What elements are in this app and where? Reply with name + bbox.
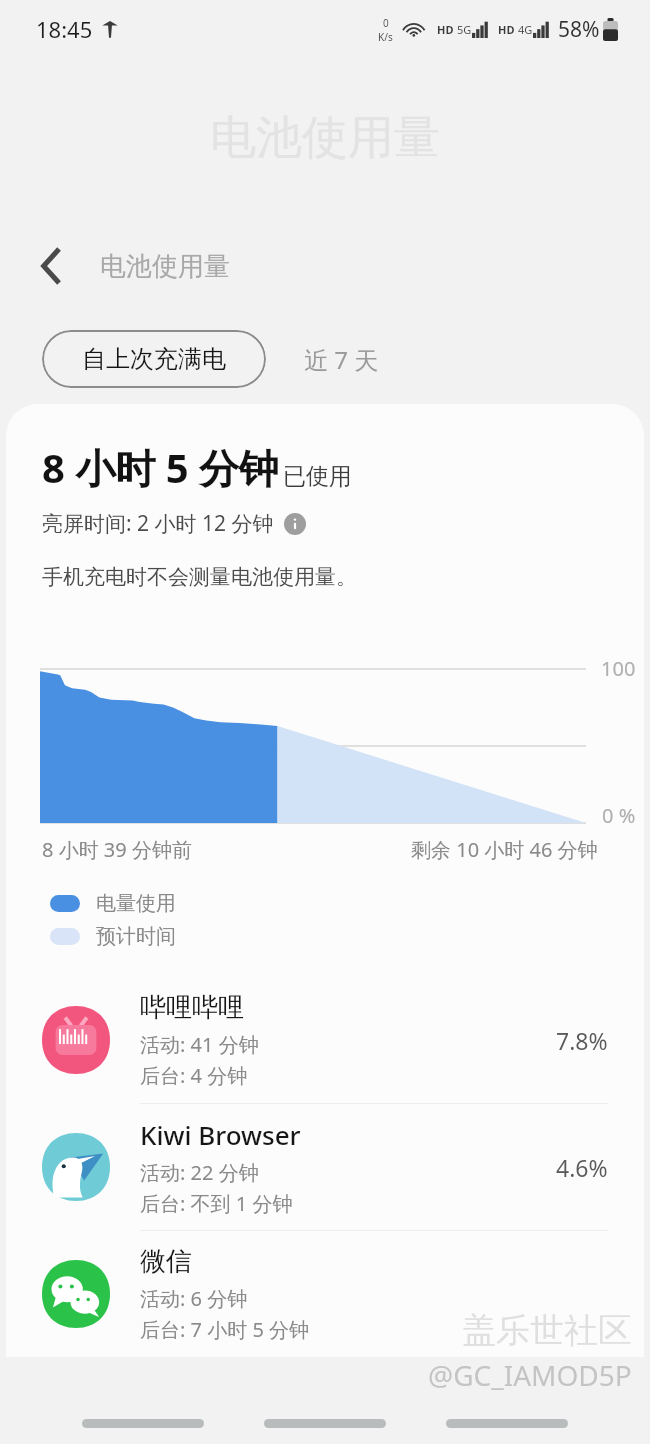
staticText: 18:45 [36,14,93,44]
button[interactable]: 主屏幕 [264,1419,386,1428]
staticText: @GC_IAMOD5P [428,1356,632,1394]
button[interactable]: 返回 [446,1419,568,1428]
staticText: HD [498,22,515,37]
staticText: 4G [518,22,533,37]
staticText: 0 % [602,802,636,829]
staticText: 电量使用 [96,891,176,916]
button[interactable]: 微信 [6,1231,644,1357]
staticText: 活动: 22 分钟 [140,1159,259,1186]
staticText: HD [437,22,454,37]
button[interactable]: 最近任务 [82,1419,204,1428]
staticText: 7.8% [556,1025,608,1056]
button[interactable]: 信息 [284,513,306,535]
staticText: 4.6% [556,1152,608,1183]
staticText: 58% [558,15,600,44]
staticText: 哔哩哔哩 [140,991,244,1024]
staticText: 后台: 不到 1 分钟 [140,1190,293,1217]
staticText: 后台: 7 小时 5 分钟 [140,1316,310,1343]
staticText: K/s [378,30,393,44]
staticText: 剩余 10 小时 46 分钟 [411,836,598,863]
staticText: 100 [601,655,636,682]
staticText: 预计时间 [96,924,176,949]
button[interactable]: 哔哩哔哩 [6,977,644,1104]
button[interactable]: Kiwi Browser [6,1104,644,1231]
button[interactable]: 返回 [26,240,78,292]
staticText: 近 7 天 [304,343,379,376]
staticText: 5G [457,22,472,37]
staticText: 自上次充满电 [82,344,226,374]
staticText: 8 小时 5 分钟 [42,440,279,495]
button[interactable]: 近 7 天 [266,330,417,388]
button[interactable]: 自上次充满电 [42,330,266,388]
staticText: 活动: 6 分钟 [140,1285,248,1312]
staticText: 微信 [140,1245,192,1278]
staticText: 8 小时 39 分钟前 [42,836,192,863]
staticText: 已使用 [283,462,352,491]
staticText: 电池使用量 [100,250,230,283]
staticText: 盖乐世社区 [462,1309,632,1352]
staticText: 电池使用量 [210,109,440,167]
staticText: 后台: 4 分钟 [140,1062,248,1089]
staticText: 手机充电时不会测量电池使用量。 [42,564,357,590]
staticText: 活动: 41 分钟 [140,1031,259,1058]
staticText: 亮屏时间: 2 小时 12 分钟 [42,509,274,538]
staticText: 0 [383,16,389,30]
staticText: Kiwi Browser [140,1117,301,1152]
